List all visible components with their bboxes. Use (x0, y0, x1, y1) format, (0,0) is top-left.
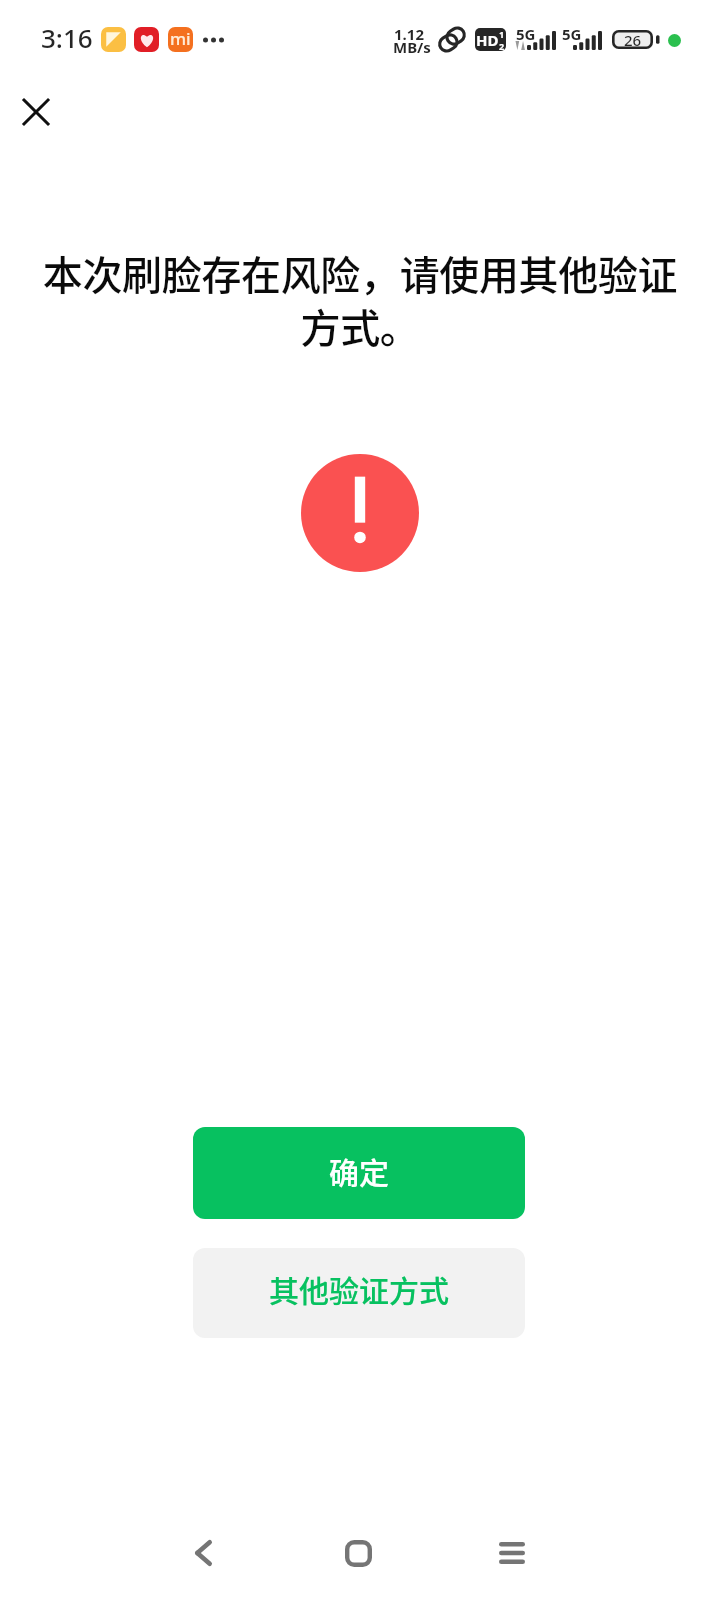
staticText: 1 (499, 28, 505, 40)
button[interactable]: Home (303, 1498, 413, 1600)
staticText: 确定 (329, 1149, 389, 1192)
button[interactable]: 确定 (193, 1127, 525, 1219)
staticText: 5G (516, 24, 536, 44)
staticText: 1.12 (394, 24, 424, 44)
staticText: 26 (624, 30, 642, 49)
staticText: mi (170, 27, 191, 50)
staticText: 其他验证方式 (269, 1267, 449, 1310)
staticText: 2 (499, 40, 505, 51)
staticText: HD (476, 30, 499, 50)
button[interactable]: 其他验证方式 (193, 1248, 525, 1338)
button[interactable]: Recent apps (457, 1498, 567, 1600)
button[interactable]: Back (148, 1498, 258, 1600)
staticText: 5G (562, 24, 582, 44)
button[interactable]: Close (0, 76, 72, 148)
staticText: MB/s (393, 37, 431, 57)
staticText: 3:16 (41, 20, 93, 55)
staticText: 本次刷脸存在风险，请使用其他验证方式。 (24, 244, 696, 355)
